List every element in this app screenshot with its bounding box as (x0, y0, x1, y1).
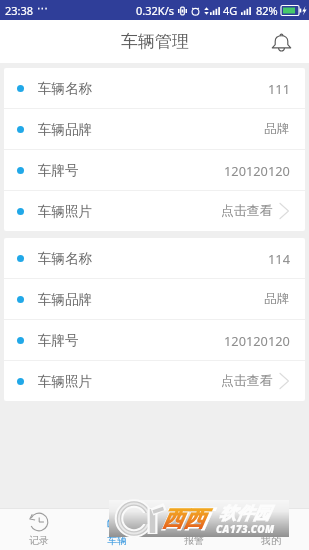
staticText: 我的 (261, 534, 281, 547)
staticText: 车辆照片 (38, 203, 92, 220)
staticText: 品牌 (264, 121, 290, 137)
staticText: 120120120 (224, 332, 290, 349)
button[interactable]: 车牌号 (4, 320, 305, 360)
button[interactable]: 车辆 (78, 512, 155, 547)
staticText: 西西 (162, 505, 205, 532)
staticText: 120120120 (224, 162, 290, 179)
button[interactable]: 车辆名称 (4, 68, 305, 108)
staticText: 车辆名称 (38, 250, 92, 267)
staticText: 车辆名称 (38, 80, 92, 97)
button[interactable]: 车辆照片 (4, 361, 305, 401)
staticText: 车辆照片 (38, 373, 92, 390)
staticText: 111 (268, 80, 290, 97)
button[interactable]: 记录 (0, 512, 78, 547)
button[interactable]: 车辆照片 (4, 191, 305, 231)
staticText: 车牌号 (38, 332, 79, 349)
staticText: 点击查看 (221, 373, 273, 389)
staticText: CA173.COM (216, 522, 275, 536)
staticText: 车辆品牌 (38, 121, 92, 138)
staticText: 点击查看 (221, 203, 273, 219)
button[interactable]: 报警 (155, 512, 232, 547)
staticText: 82% (256, 3, 278, 18)
staticText: 软件园 (219, 503, 270, 524)
staticText: 车辆品牌 (38, 291, 92, 308)
staticText: 记录 (29, 534, 49, 547)
button[interactable]: 车牌号 (4, 150, 305, 190)
button[interactable]: Notifications (269, 30, 293, 54)
button[interactable]: 车辆名称 (4, 238, 305, 278)
staticText: 114 (268, 250, 290, 267)
staticText: 西西 (161, 504, 208, 534)
staticText: 报警 (184, 534, 204, 547)
staticText: 车辆管理 (121, 31, 189, 52)
staticText: 0.32K/s (136, 3, 174, 18)
staticText: 品牌 (264, 291, 290, 307)
button[interactable]: 我的 (232, 512, 309, 547)
staticText: 车辆 (107, 534, 127, 547)
staticText: 车牌号 (38, 162, 79, 179)
staticText: 23:38 (5, 3, 34, 18)
staticText: 4G (223, 3, 238, 18)
staticText: ⋯ (37, 2, 48, 15)
button[interactable]: 车辆品牌 (4, 279, 305, 319)
button[interactable]: 车辆品牌 (4, 109, 305, 149)
